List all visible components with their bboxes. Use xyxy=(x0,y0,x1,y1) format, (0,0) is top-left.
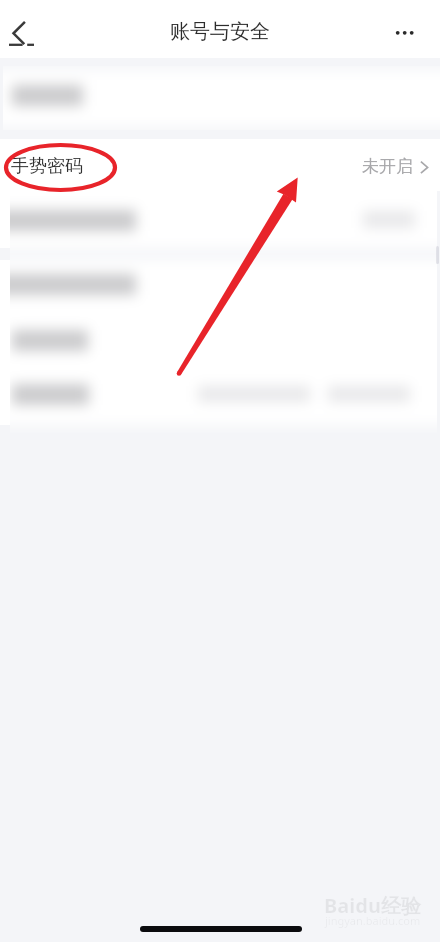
staticText: jingyan.baidu.com xyxy=(325,913,421,928)
staticText: 手势密码 xyxy=(11,155,83,178)
staticText: 账号与安全 xyxy=(170,19,270,44)
staticText: 未开启 xyxy=(362,156,413,177)
button[interactable]: 手势密码 xyxy=(0,139,440,191)
button[interactable]: More options xyxy=(383,11,427,55)
button[interactable]: Back xyxy=(2,10,46,50)
staticText: Baidu经验 xyxy=(324,892,421,919)
